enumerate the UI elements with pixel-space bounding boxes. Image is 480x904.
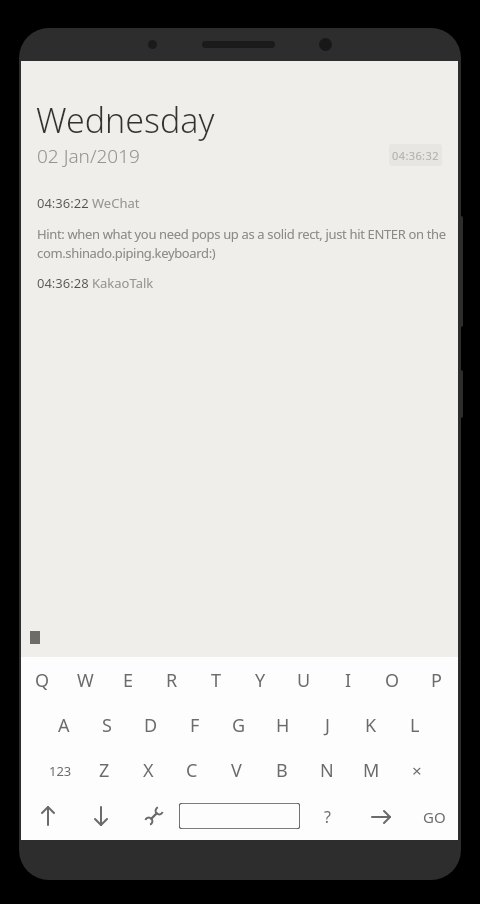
staticText: K — [365, 713, 377, 738]
button[interactable]: G — [217, 703, 261, 748]
button[interactable]: P — [414, 657, 458, 703]
staticText: Y — [255, 668, 266, 693]
button[interactable]: K — [349, 703, 393, 748]
button[interactable]: I — [326, 657, 370, 703]
staticText: Q — [35, 668, 50, 693]
button[interactable] — [179, 803, 300, 829]
button[interactable]: Q — [21, 657, 64, 703]
staticText: W — [77, 668, 94, 693]
staticText: F — [190, 713, 200, 738]
staticText: B — [276, 758, 288, 783]
button[interactable]: F — [173, 703, 217, 748]
button[interactable]: W — [64, 657, 107, 703]
staticText: D — [144, 713, 158, 738]
button[interactable]: J — [305, 703, 349, 748]
staticText: WeChat — [92, 194, 140, 212]
staticText: I — [345, 668, 352, 693]
button[interactable] — [89, 804, 113, 828]
button[interactable]: U — [282, 657, 326, 703]
staticText: GO — [423, 807, 446, 827]
button[interactable]: Z — [82, 748, 126, 793]
button[interactable]: GO — [418, 793, 450, 840]
staticText: C — [186, 758, 198, 783]
button[interactable]: E — [107, 657, 150, 703]
button[interactable]: L — [393, 703, 437, 748]
staticText: Hint: when what you need pops up as a so… — [37, 225, 461, 262]
staticText: O — [385, 668, 400, 693]
staticText: Wednesday — [36, 97, 215, 143]
button[interactable]: C — [170, 748, 214, 793]
staticText: T — [211, 668, 222, 693]
staticText: U — [297, 668, 311, 693]
staticText: N — [320, 758, 334, 783]
staticText: 123 — [49, 762, 72, 780]
button[interactable]: ? — [317, 793, 337, 840]
staticText: X — [143, 758, 154, 783]
staticText: E — [123, 668, 134, 693]
button[interactable]: N — [304, 748, 349, 793]
staticText: KakaoTalk — [92, 274, 154, 292]
button[interactable]: 123 — [38, 748, 82, 793]
staticText: R — [166, 668, 178, 693]
staticText: V — [231, 758, 242, 783]
staticText: A — [58, 713, 70, 738]
button[interactable] — [36, 804, 60, 828]
staticText: 04:36:28 — [37, 274, 92, 292]
button[interactable] — [369, 805, 393, 829]
button[interactable]: H — [261, 703, 305, 748]
staticText: H — [276, 713, 290, 738]
staticText: P — [431, 668, 442, 693]
button[interactable]: A — [42, 703, 85, 748]
button[interactable]: T — [194, 657, 238, 703]
staticText: Z — [99, 758, 110, 783]
staticText: J — [325, 713, 330, 738]
button[interactable]: D — [129, 703, 173, 748]
button[interactable]: Y — [238, 657, 282, 703]
button[interactable] — [143, 805, 165, 827]
button[interactable]: × — [394, 748, 439, 793]
button[interactable]: M — [349, 748, 394, 793]
staticText: 02 Jan/2019 — [37, 143, 140, 169]
staticText: 04:36:32 — [392, 148, 439, 163]
button[interactable]: S — [85, 703, 129, 748]
staticText: × — [412, 759, 422, 782]
staticText: M — [363, 758, 380, 783]
staticText: 04:36:22 — [37, 194, 92, 212]
button[interactable]: B — [259, 748, 304, 793]
button[interactable]: V — [214, 748, 259, 793]
button[interactable]: O — [370, 657, 414, 703]
staticText: S — [102, 713, 112, 738]
staticText: ? — [324, 806, 331, 828]
staticText: L — [410, 713, 420, 738]
button[interactable]: X — [126, 748, 170, 793]
staticText: G — [232, 713, 246, 738]
button[interactable]: R — [150, 657, 194, 703]
